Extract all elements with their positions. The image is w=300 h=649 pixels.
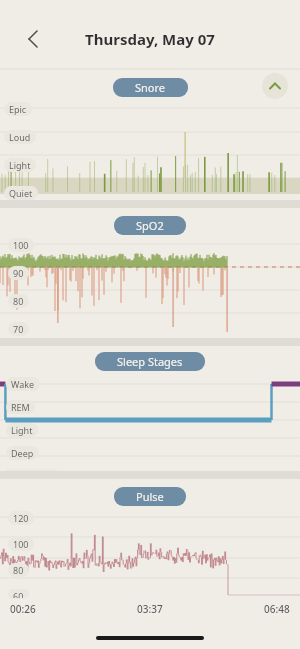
staticText: Epic — [9, 103, 27, 115]
staticText: Deep — [11, 447, 34, 459]
button[interactable]: SpO2 — [114, 216, 186, 235]
staticText: 100 — [13, 538, 29, 550]
staticText: Quiet — [9, 187, 33, 199]
staticText: 03:37 — [137, 602, 163, 616]
staticText: 06:48 — [264, 602, 290, 616]
staticText: 00:26 — [10, 602, 36, 616]
button[interactable]: Back — [14, 18, 48, 52]
staticText: Loud — [9, 131, 31, 143]
staticText: SpO2 — [136, 218, 164, 233]
staticText: Wake — [11, 378, 35, 390]
staticText: Thursday, May 07 — [85, 29, 215, 49]
staticText: Sleep Stages — [117, 354, 183, 369]
button[interactable]: Collapse — [262, 73, 288, 99]
staticText: 80 — [13, 295, 24, 307]
staticText: REM — [11, 401, 30, 413]
staticText: 80 — [13, 564, 24, 576]
staticText: 60 — [13, 590, 24, 598]
staticText: Snore — [135, 80, 166, 95]
staticText: 120 — [13, 512, 29, 524]
button[interactable]: Sleep Stages — [95, 352, 205, 371]
staticText: 100 — [13, 239, 29, 251]
staticText: Pulse — [136, 489, 164, 504]
button[interactable]: Pulse — [114, 487, 186, 506]
staticText: 70 — [13, 323, 24, 335]
staticText: Light — [11, 424, 33, 436]
staticText: 90 — [13, 267, 24, 279]
staticText: Light — [9, 159, 31, 171]
button[interactable]: Snore — [113, 78, 188, 97]
